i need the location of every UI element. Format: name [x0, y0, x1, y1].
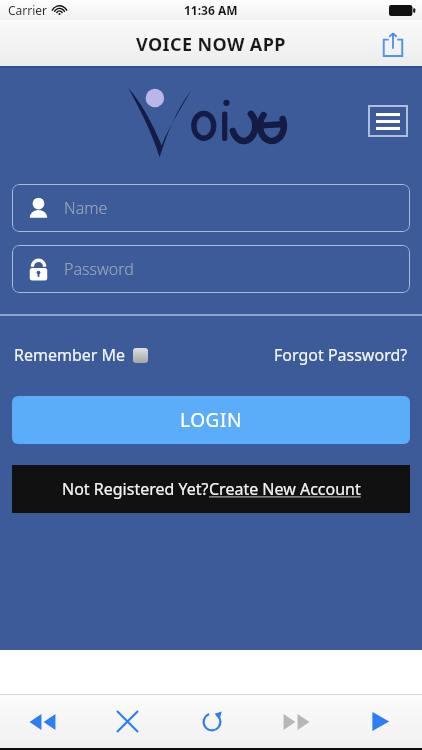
staticText: Remember Me — [14, 344, 126, 366]
button[interactable]: LOGIN — [12, 396, 410, 444]
button[interactable]: Back — [0, 695, 85, 748]
button[interactable]: Reload — [170, 695, 254, 748]
button[interactable]: Play — [338, 695, 422, 748]
staticText: 11:36 AM — [184, 2, 238, 18]
staticText: Create New Account — [209, 478, 361, 500]
button[interactable]: Name — [12, 184, 410, 232]
button[interactable]: Password — [12, 245, 410, 293]
button[interactable]: Stop — [85, 695, 170, 748]
staticText: Password — [64, 258, 134, 280]
button[interactable]: Not Registered Yet? — [12, 465, 410, 513]
button[interactable]: Menu — [368, 105, 408, 137]
button[interactable]: Forward — [254, 695, 338, 748]
staticText: Name — [64, 197, 108, 219]
button[interactable]: Remember Me — [14, 344, 148, 366]
button[interactable]: Share — [374, 25, 412, 63]
staticText: Not Registered Yet? — [62, 478, 209, 500]
staticText: Carrier — [8, 2, 48, 18]
button[interactable]: Forgot Password? — [274, 344, 408, 366]
staticText: VOICE NOW APP — [136, 32, 286, 57]
staticText: LOGIN — [180, 407, 243, 433]
